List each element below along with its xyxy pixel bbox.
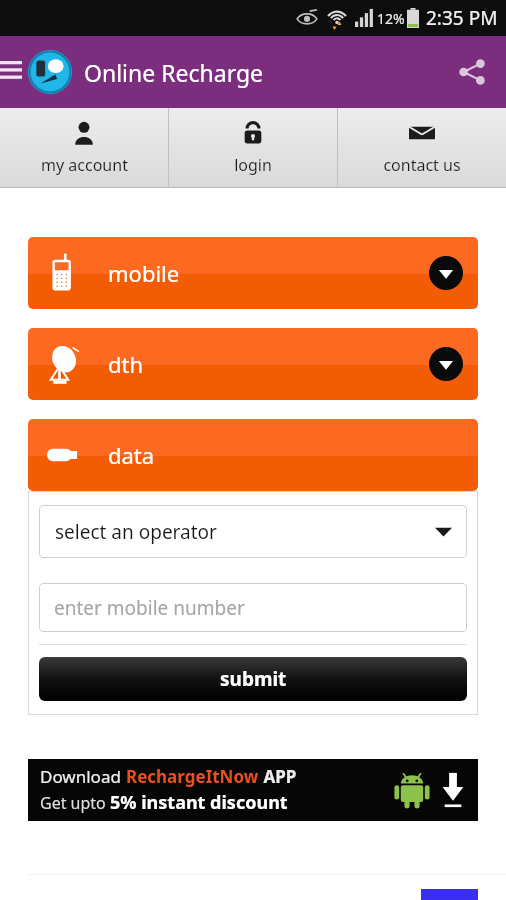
button[interactable]: dth [28, 328, 478, 400]
button[interactable]: enter mobile number [39, 583, 467, 632]
staticText: contact us [383, 154, 461, 176]
button[interactable]: login [169, 108, 337, 188]
button[interactable]: Expand mobile [429, 256, 463, 290]
button[interactable]: mobile [28, 237, 478, 309]
staticText: enter mobile number [54, 595, 245, 621]
button[interactable]: contact us [338, 108, 506, 188]
button[interactable]: Menu [0, 55, 28, 89]
button[interactable]: select an operator [39, 505, 467, 558]
staticText: Online Recharge [84, 57, 264, 88]
staticText: data [108, 440, 155, 470]
button[interactable]: Expand dth [429, 347, 463, 381]
staticText: Download [40, 765, 126, 788]
staticText: my account [41, 154, 128, 176]
staticText: RechargeItNow [126, 765, 259, 788]
button[interactable]: Share [452, 52, 492, 92]
button[interactable]: data [28, 419, 478, 491]
staticText: 12% [377, 9, 405, 28]
button[interactable]: Download [28, 759, 478, 821]
staticText: APP [259, 765, 297, 788]
button[interactable]: submit [39, 657, 467, 701]
staticText: mobile [108, 258, 180, 288]
button[interactable]: my account [0, 108, 168, 188]
staticText: 5% instant discount [110, 790, 288, 815]
staticText: login [234, 154, 272, 176]
staticText: dth [108, 349, 144, 379]
staticText: select an operator [55, 519, 217, 545]
staticText: 2:35 PM [426, 5, 498, 31]
staticText: Get upto [40, 792, 110, 814]
staticText: submit [220, 666, 287, 692]
